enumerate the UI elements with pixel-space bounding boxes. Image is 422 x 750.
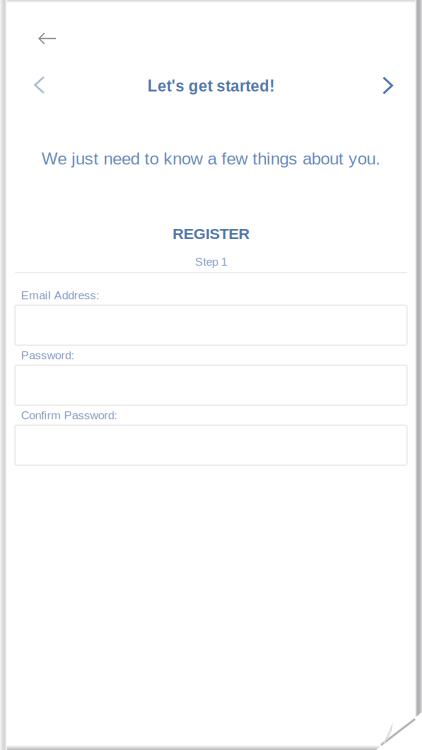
button[interactable] (15, 305, 407, 345)
staticText: REGISTER (172, 225, 249, 242)
button[interactable]: Back (29, 22, 66, 55)
button[interactable] (15, 365, 407, 405)
staticText: We just need to know a few things about … (41, 149, 380, 168)
staticText: Password: (21, 349, 74, 361)
button[interactable] (15, 425, 407, 465)
button[interactable]: Next step (372, 68, 403, 103)
staticText: Email Address: (21, 289, 99, 301)
staticText: Step 1 (195, 255, 227, 268)
button[interactable]: Previous step (24, 68, 55, 104)
staticText: Let's get started! (147, 77, 274, 95)
staticText: Confirm Password: (21, 409, 117, 421)
